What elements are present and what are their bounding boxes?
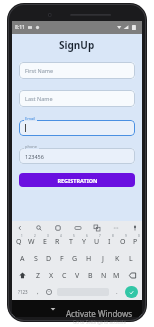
staticText: D [46,254,52,264]
staticText: T [69,237,73,247]
staticText: G [72,254,78,264]
staticText: X [49,271,54,281]
button[interactable]: Enter [125,286,138,298]
staticText: 7 [99,234,101,238]
button[interactable]: Emoji [43,286,55,298]
staticText: 2 [34,234,36,238]
button[interactable]: , [32,286,43,298]
button[interactable]: Last Name [19,90,135,107]
staticText: A [20,254,25,264]
button[interactable]: P [129,233,142,250]
staticText: REGISTRATION [57,177,98,184]
staticText: 8:11 [15,24,25,31]
staticText: 1 [21,234,23,238]
button[interactable]: T [64,233,77,250]
button[interactable]: W [25,233,38,250]
staticText: S [34,254,38,264]
button[interactable]: L [124,250,138,267]
staticText: M [113,271,120,281]
button[interactable]: U [90,233,103,250]
button[interactable]: J [96,250,110,267]
staticText: . [116,288,118,296]
button[interactable]: ?123 [14,286,32,298]
button[interactable]: F [55,250,68,267]
button[interactable]: Search [34,223,43,232]
button[interactable]: REGISTRATION [19,173,135,187]
staticText: 0 [138,234,140,238]
button[interactable]: GIF [73,223,82,232]
button[interactable]: Translate [92,223,101,232]
staticText: J [102,254,104,264]
staticText: SignUp [59,38,95,52]
staticText: phone [25,144,38,149]
button[interactable]: I [103,233,116,250]
button[interactable]: Back [15,223,24,232]
button[interactable]: Q [12,233,25,250]
staticText: Activate Windows [66,308,133,319]
staticText: K [115,254,120,264]
staticText: H [86,254,92,264]
staticText: B [88,271,93,281]
staticText: E [43,237,47,247]
button[interactable]: X [45,267,58,284]
button[interactable]: Email [19,116,135,136]
staticText: L [129,254,133,264]
button[interactable]: A [16,250,29,267]
button[interactable]: H [82,250,96,267]
button[interactable]: R [51,233,64,250]
staticText: O [120,237,126,247]
button[interactable]: phone [19,144,135,164]
button[interactable]: S [29,250,42,267]
button[interactable]: G [68,250,82,267]
staticText: N [101,271,107,281]
staticText: 5 [73,234,75,238]
button[interactable]: More options [111,223,120,232]
staticText: Z [36,271,41,281]
staticText: 3 [47,234,49,238]
button[interactable]: Voice input [130,223,139,232]
staticText: Go to Settings to activate [73,319,126,325]
staticText: R [55,237,60,247]
button[interactable]: Backspace [123,267,142,284]
staticText: Email [25,116,36,121]
staticText: 6 [86,234,88,238]
button[interactable]: O [116,233,129,250]
button[interactable]: Stickers [53,223,62,232]
button[interactable]: Y [77,233,90,250]
button[interactable]: Z [32,267,45,284]
staticText: 123456 [25,153,44,160]
staticText: First Name [25,67,54,74]
staticText: , [37,288,39,296]
staticText: Q [16,237,22,247]
button[interactable]: M [110,267,123,284]
button[interactable]: B [84,267,97,284]
staticText: 9 [125,234,127,238]
button[interactable]: . [111,286,123,298]
staticText: Last Name [25,95,53,102]
button[interactable]: C [58,267,71,284]
button[interactable]: K [110,250,124,267]
button[interactable]: Shift [12,267,32,284]
button[interactable]: First Name [19,62,135,79]
button[interactable]: D [42,250,55,267]
staticText: Y [82,237,86,247]
staticText: I [108,237,111,247]
staticText: 4 [60,234,62,238]
button[interactable]: E [38,233,51,250]
button[interactable]: N [97,267,110,284]
staticText: ?123 [18,289,28,295]
staticText: U [94,237,100,247]
staticText: W [28,237,35,247]
staticText: P [133,237,138,247]
button[interactable]: V [71,267,84,284]
staticText: 8 [112,234,114,238]
staticText: F [60,254,64,264]
staticText: V [75,271,80,281]
button[interactable]: Close keyboard [48,304,58,314]
staticText: C [62,271,67,281]
